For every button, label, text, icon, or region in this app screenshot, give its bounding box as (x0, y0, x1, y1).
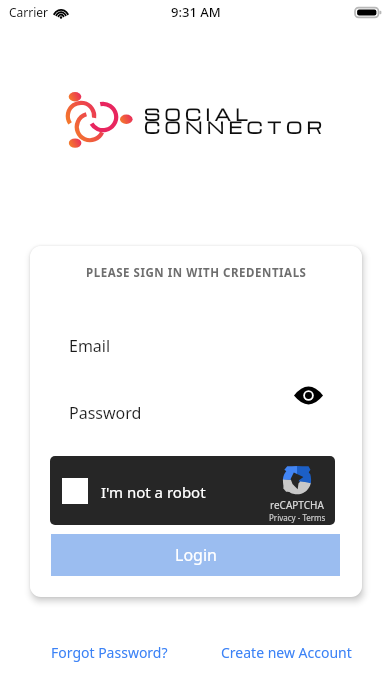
staticText: Carrier (9, 4, 49, 20)
button[interactable]: Create new Account (221, 643, 352, 662)
button[interactable]: Login (51, 534, 340, 576)
staticText: I'm not a robot (101, 482, 206, 502)
staticText: reCAPTCHA (270, 498, 324, 512)
staticText: SOCIAL (144, 104, 253, 125)
staticText: Create new Account (221, 643, 352, 662)
staticText: Email (69, 335, 111, 357)
staticText: 9:31 AM (171, 3, 221, 21)
staticText: Login (175, 544, 217, 566)
button[interactable]: Show password (285, 379, 332, 412)
button[interactable]: I'm not a robot (50, 456, 335, 525)
staticText: CONNECTOR (144, 117, 327, 138)
staticText: Forgot Password? (51, 643, 168, 662)
staticText: Password (69, 402, 142, 424)
staticText: PLEASE SIGN IN WITH CREDENTIALS (86, 265, 307, 281)
staticText: Privacy - Terms (269, 512, 326, 523)
button[interactable]: Forgot Password? (51, 643, 168, 662)
